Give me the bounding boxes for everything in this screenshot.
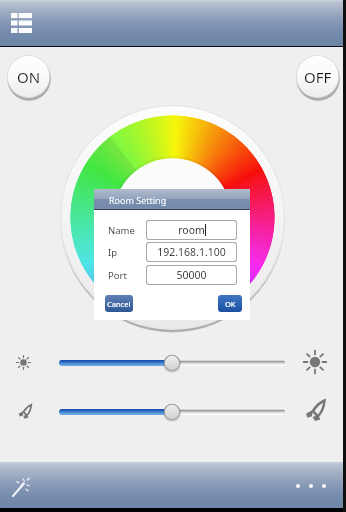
other: Speed: [302, 398, 327, 423]
staticText: Port: [108, 269, 127, 282]
staticText: ON: [17, 67, 41, 87]
staticText: room: [178, 223, 205, 237]
staticText: Room Setting: [109, 194, 167, 206]
staticText: OFF: [304, 67, 332, 87]
button[interactable]: OK: [218, 295, 242, 312]
button[interactable]: room: [147, 221, 236, 239]
button[interactable]: [59, 353, 285, 373]
button[interactable]: 50000: [147, 266, 236, 284]
staticText: Name: [108, 224, 135, 237]
button[interactable]: Colour wheel: [60, 105, 285, 330]
button[interactable]: Menu: [11, 13, 32, 33]
staticText: Ip: [108, 246, 118, 259]
button[interactable]: Cancel: [105, 295, 133, 312]
button[interactable]: More options: [296, 484, 326, 488]
button[interactable]: ON: [6, 55, 52, 101]
staticText: Cancel: [107, 299, 131, 309]
other: Speed: [16, 403, 33, 420]
button[interactable]: Effects: [11, 474, 35, 498]
button[interactable]: OFF: [295, 55, 341, 101]
staticText: 50000: [176, 268, 207, 282]
other: Brightness: [303, 350, 327, 374]
staticText: 192.168.1.100: [157, 245, 226, 259]
button[interactable]: 192.168.1.100: [147, 243, 236, 261]
button[interactable]: [59, 402, 285, 422]
staticText: OK: [225, 299, 236, 309]
other: Brightness: [16, 355, 31, 370]
